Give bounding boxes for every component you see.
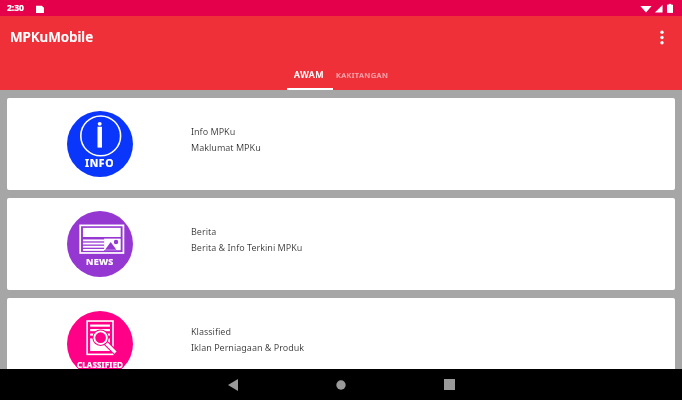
staticText: AWAM	[294, 68, 325, 80]
button[interactable]: INFO	[7, 98, 675, 190]
button[interactable]: Home	[323, 369, 359, 400]
staticText: CLASSIFIED	[77, 359, 123, 369]
staticText: Berita & Info Terkini MPKu	[191, 241, 303, 253]
button[interactable]: AWAM	[285, 60, 334, 90]
button[interactable]: More options	[649, 24, 675, 50]
staticText: Info MPKu	[191, 125, 236, 137]
button[interactable]: NEWS	[7, 198, 675, 290]
staticText: Klassified	[191, 325, 231, 337]
staticText: MPKuMobile	[10, 28, 94, 46]
button[interactable]: CLASSIFIED	[7, 298, 675, 369]
button[interactable]: Recents	[431, 369, 467, 400]
staticText: 2:30	[7, 2, 24, 14]
button[interactable]: Back	[215, 369, 251, 400]
staticText: Iklan Perniagaan & Produk	[191, 341, 305, 353]
staticText: NEWS	[86, 255, 114, 267]
staticText: INFO	[85, 156, 115, 170]
staticText: Maklumat MPKu	[191, 141, 261, 153]
staticText: KAKITANGAN	[336, 70, 389, 80]
staticText: Berita	[191, 225, 217, 237]
button[interactable]: KAKITANGAN	[327, 60, 398, 90]
